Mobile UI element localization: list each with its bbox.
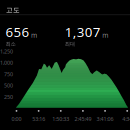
staticText: 250 bbox=[4, 93, 13, 100]
staticText: 1,250 bbox=[0, 48, 13, 55]
staticText: 4:34 bbox=[122, 115, 130, 123]
staticText: 750 bbox=[4, 71, 13, 78]
staticText: 1,307 bbox=[65, 23, 101, 41]
staticText: m bbox=[31, 31, 37, 40]
staticText: 500 bbox=[4, 82, 13, 89]
staticText: 최소 bbox=[5, 41, 15, 47]
staticText: 2:45:49 bbox=[74, 115, 91, 123]
staticText: 3:41:06 bbox=[97, 115, 114, 123]
staticText: 53:16 bbox=[32, 115, 45, 123]
staticText: 0:00 bbox=[11, 115, 21, 123]
staticText: 1,000 bbox=[0, 59, 13, 66]
staticText: 고도 bbox=[6, 6, 20, 14]
staticText: 656 bbox=[5, 23, 29, 41]
staticText: 최대 bbox=[65, 41, 75, 47]
staticText: 1:50:33 bbox=[52, 115, 69, 123]
staticText: m bbox=[102, 31, 108, 40]
